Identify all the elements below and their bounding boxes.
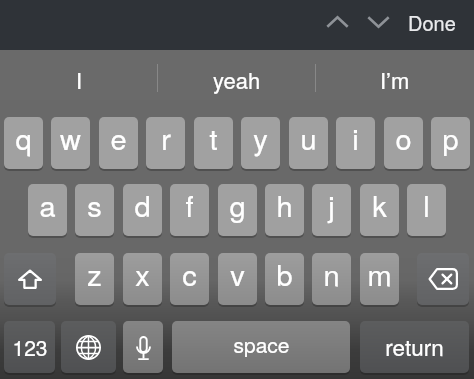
- staticText: b: [276, 253, 293, 295]
- button[interactable]: return: [360, 321, 469, 373]
- staticText: I’m: [380, 64, 410, 96]
- button[interactable]: I: [0, 50, 158, 117]
- button[interactable]: t: [194, 117, 233, 169]
- button[interactable]: space: [172, 321, 350, 373]
- staticText: j: [328, 184, 335, 226]
- button[interactable]: k: [360, 184, 399, 236]
- staticText: r: [161, 117, 171, 159]
- button[interactable]: v: [218, 253, 257, 305]
- staticText: return: [385, 330, 444, 362]
- staticText: p: [442, 117, 459, 159]
- staticText: h: [276, 184, 293, 226]
- staticText: y: [253, 117, 268, 159]
- staticText: o: [395, 117, 412, 159]
- staticText: d: [134, 184, 151, 226]
- button[interactable]: l: [407, 184, 446, 236]
- button[interactable]: i: [336, 117, 375, 169]
- button[interactable]: Done: [399, 0, 465, 44]
- button[interactable]: 123: [4, 321, 55, 373]
- button[interactable]: x: [123, 253, 162, 305]
- staticText: Done: [408, 8, 456, 37]
- button[interactable]: a: [28, 184, 67, 236]
- button[interactable]: I’m: [316, 50, 474, 117]
- button[interactable]: q: [4, 117, 43, 169]
- staticText: m: [367, 253, 392, 295]
- button[interactable]: y: [241, 117, 280, 169]
- button[interactable]: m: [360, 253, 399, 305]
- staticText: w: [60, 117, 81, 159]
- staticText: a: [39, 184, 56, 226]
- staticText: g: [229, 184, 246, 226]
- staticText: x: [135, 253, 150, 295]
- staticText: space: [233, 329, 290, 359]
- staticText: t: [209, 117, 218, 159]
- button[interactable]: d: [123, 184, 162, 236]
- button[interactable]: w: [51, 117, 90, 169]
- button[interactable]: j: [312, 184, 351, 236]
- staticText: f: [185, 184, 194, 226]
- button[interactable]: f: [170, 184, 209, 236]
- staticText: v: [230, 253, 245, 295]
- button[interactable]: h: [265, 184, 304, 236]
- button[interactable]: n: [312, 253, 351, 305]
- staticText: k: [372, 184, 387, 226]
- button[interactable]: Previous field: [315, 0, 359, 44]
- staticText: i: [352, 117, 359, 159]
- button[interactable]: Backspace: [417, 253, 469, 305]
- button[interactable]: yeah: [158, 50, 316, 117]
- staticText: yeah: [213, 64, 261, 96]
- button[interactable]: Shift: [4, 253, 56, 305]
- staticText: 123: [12, 332, 48, 362]
- staticText: c: [182, 253, 197, 295]
- button[interactable]: e: [99, 117, 138, 169]
- button[interactable]: s: [75, 184, 114, 236]
- staticText: z: [87, 253, 102, 295]
- staticText: l: [423, 184, 430, 226]
- staticText: q: [15, 117, 32, 159]
- staticText: u: [300, 117, 317, 159]
- button[interactable]: g: [218, 184, 257, 236]
- button[interactable]: Dictation: [123, 321, 163, 373]
- button[interactable]: b: [265, 253, 304, 305]
- button[interactable]: p: [431, 117, 470, 169]
- staticText: e: [110, 117, 127, 159]
- staticText: s: [87, 184, 102, 226]
- button[interactable]: c: [170, 253, 209, 305]
- button[interactable]: o: [384, 117, 423, 169]
- button[interactable]: r: [146, 117, 185, 169]
- button[interactable]: z: [75, 253, 114, 305]
- button[interactable]: u: [289, 117, 328, 169]
- staticText: n: [323, 253, 340, 295]
- button[interactable]: Next field: [356, 0, 400, 44]
- staticText: I: [76, 64, 83, 96]
- button[interactable]: Next keyboard: [61, 321, 116, 373]
